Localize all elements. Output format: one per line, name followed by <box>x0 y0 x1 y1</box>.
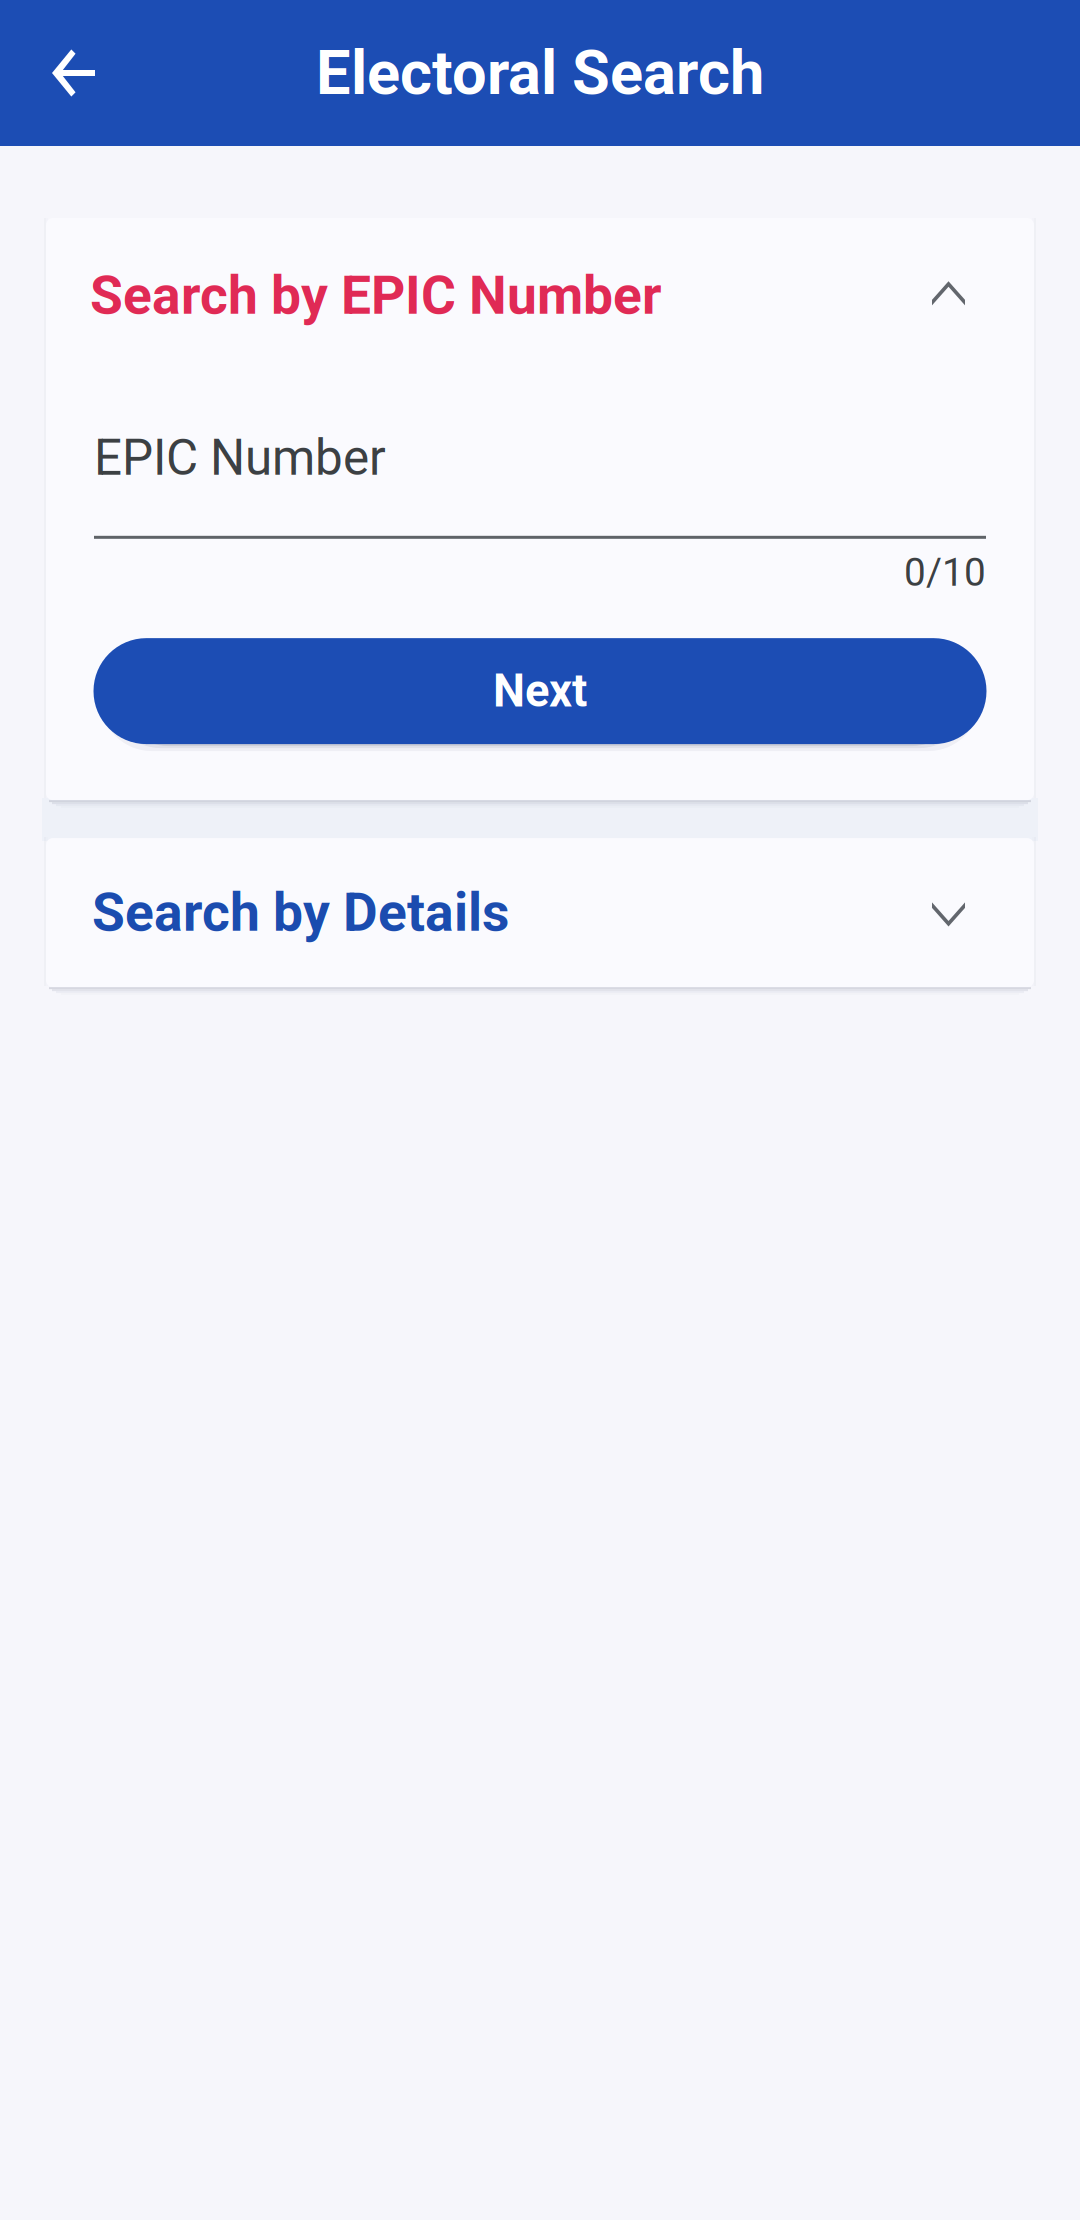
button[interactable]: Search by EPIC Number <box>46 218 1034 373</box>
button[interactable]: Search by Details <box>46 838 1034 987</box>
staticText: Search by Details <box>92 881 509 944</box>
staticText: Electoral Search <box>316 37 764 109</box>
staticText: Search by EPIC Number <box>90 264 662 327</box>
staticText: Next <box>493 665 587 718</box>
button[interactable]: Next <box>93 638 986 744</box>
staticText: 0/10 <box>904 550 986 595</box>
button[interactable]: Back <box>0 0 147 146</box>
staticText: EPIC Number <box>94 429 386 487</box>
